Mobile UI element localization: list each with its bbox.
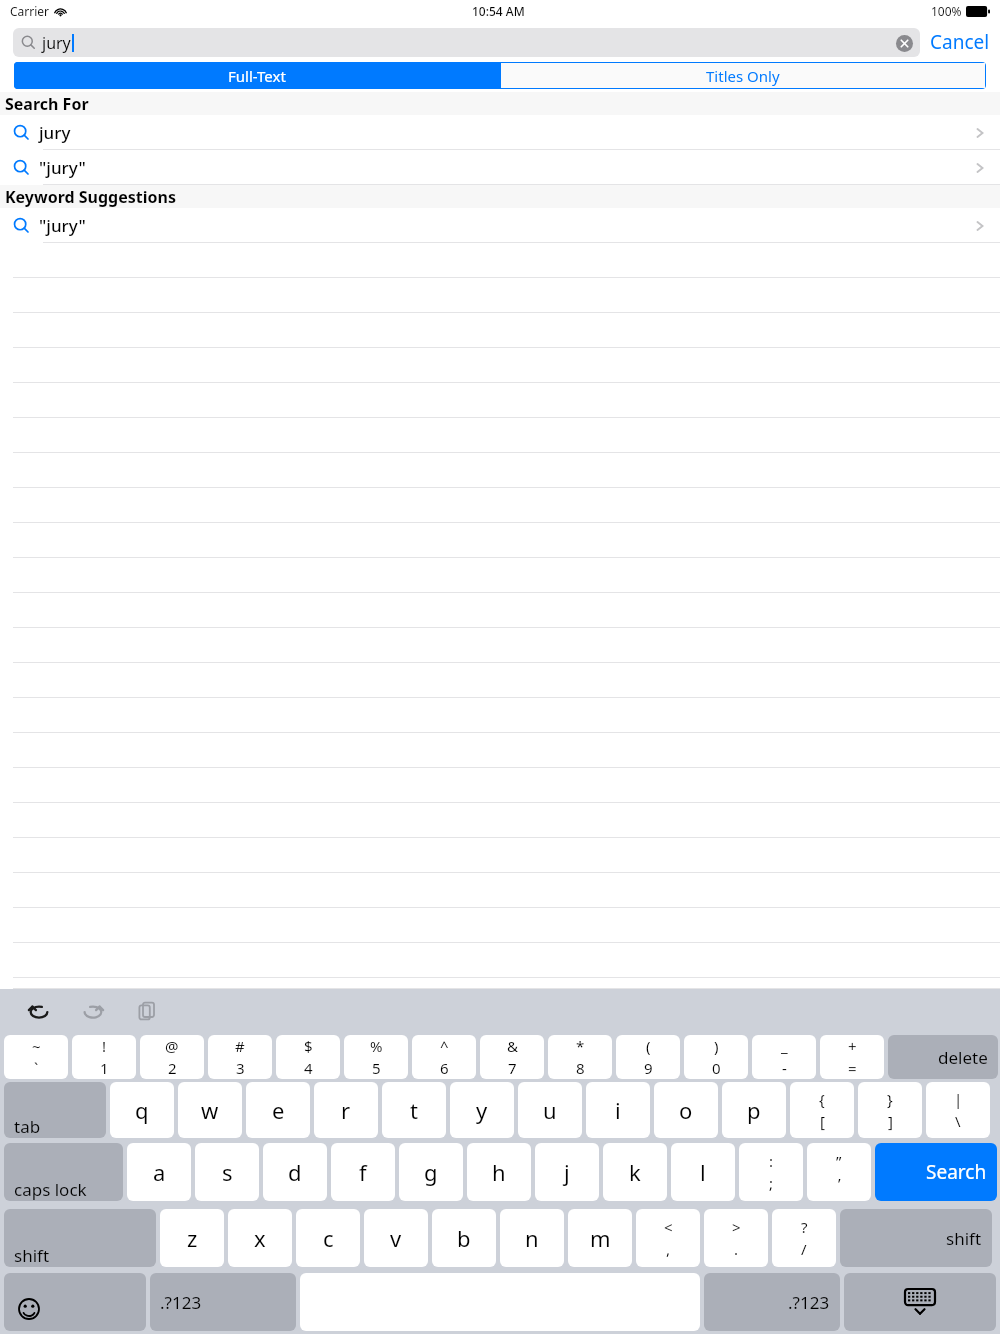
button[interactable]: } <box>858 1082 922 1138</box>
button[interactable]: ? <box>772 1209 836 1267</box>
button[interactable]: l <box>671 1143 735 1201</box>
button[interactable]: Redo <box>76 994 110 1028</box>
staticText: [ <box>820 1111 825 1131</box>
staticText: Full-Text <box>228 66 286 86</box>
button[interactable]: x <box>228 1209 292 1267</box>
staticText: , <box>666 1239 671 1259</box>
staticText: m <box>590 1223 611 1253</box>
button[interactable]: % <box>344 1035 408 1079</box>
button[interactable]: { <box>790 1082 854 1138</box>
button[interactable]: Emoji <box>4 1273 146 1331</box>
staticText: shift <box>14 1244 50 1267</box>
button[interactable]: i <box>586 1082 650 1138</box>
button[interactable]: Hide keyboard <box>844 1273 996 1331</box>
button[interactable]: e <box>246 1082 310 1138</box>
staticText: 100% <box>931 3 962 19</box>
button[interactable]: n <box>500 1209 564 1267</box>
button[interactable]: y <box>450 1082 514 1138</box>
button[interactable]: d <box>263 1143 327 1201</box>
button[interactable]: jury <box>0 115 1000 150</box>
staticText: Keyword Suggestions <box>5 186 176 208</box>
staticText: 3 <box>236 1058 245 1078</box>
button[interactable]: Clear text <box>891 30 917 56</box>
staticText: .?123 <box>788 1291 830 1314</box>
staticText: shift <box>946 1227 982 1250</box>
button[interactable]: q <box>110 1082 174 1138</box>
button[interactable]: r <box>314 1082 378 1138</box>
staticText: v <box>390 1223 402 1253</box>
button[interactable]: j <box>535 1143 599 1201</box>
staticText: 10:54 AM <box>472 3 525 19</box>
button[interactable]: "jury" <box>0 208 1000 243</box>
button[interactable]: * <box>548 1035 612 1079</box>
button[interactable]: c <box>296 1209 360 1267</box>
button[interactable]: # <box>208 1035 272 1079</box>
staticText: < <box>664 1217 673 1237</box>
button[interactable]: _ <box>752 1035 816 1079</box>
staticText: g <box>424 1157 438 1187</box>
button[interactable]: Cancel <box>930 29 990 55</box>
staticText: x <box>254 1223 266 1253</box>
button[interactable]: k <box>603 1143 667 1201</box>
button[interactable]: delete <box>888 1035 998 1079</box>
button[interactable]: z <box>160 1209 224 1267</box>
staticText: w <box>201 1095 219 1125</box>
button[interactable]: tab <box>4 1082 106 1138</box>
button[interactable]: b <box>432 1209 496 1267</box>
button[interactable]: f <box>331 1143 395 1201</box>
button[interactable]: Full-Text <box>14 62 500 89</box>
button[interactable]: w <box>178 1082 242 1138</box>
button[interactable]: + <box>820 1035 884 1079</box>
staticText: . <box>734 1239 739 1259</box>
staticText: ` <box>34 1058 39 1078</box>
button[interactable]: jury <box>13 28 920 57</box>
staticText: * <box>576 1036 585 1056</box>
staticText: Carrier <box>10 3 50 19</box>
button[interactable]: "jury" <box>0 150 1000 185</box>
button[interactable]: : <box>739 1143 803 1201</box>
button[interactable]: v <box>364 1209 428 1267</box>
button[interactable]: ) <box>684 1035 748 1079</box>
button[interactable]: < <box>636 1209 700 1267</box>
staticText: 6 <box>440 1058 449 1078</box>
button[interactable]: s <box>195 1143 259 1201</box>
button[interactable]: Titles Only <box>501 63 985 88</box>
button[interactable]: Paste <box>130 994 164 1028</box>
staticText: p <box>747 1095 761 1125</box>
button[interactable]: ” <box>807 1143 871 1201</box>
button[interactable]: shift <box>4 1209 156 1267</box>
staticText: Titles Only <box>706 66 780 86</box>
button[interactable]: & <box>480 1035 544 1079</box>
button[interactable]: $ <box>276 1035 340 1079</box>
staticText: \ <box>955 1111 961 1131</box>
button[interactable]: g <box>399 1143 463 1201</box>
staticText: $ <box>304 1036 313 1056</box>
button[interactable]: .?123 <box>704 1273 840 1331</box>
button[interactable]: m <box>568 1209 632 1267</box>
staticText: = <box>848 1058 857 1078</box>
button[interactable]: ( <box>616 1035 680 1079</box>
button[interactable]: Undo <box>22 994 56 1028</box>
button[interactable]: a <box>127 1143 191 1201</box>
button[interactable]: p <box>722 1082 786 1138</box>
button[interactable]: h <box>467 1143 531 1201</box>
button[interactable]: ! <box>72 1035 136 1079</box>
button[interactable]: u <box>518 1082 582 1138</box>
staticText: @ <box>165 1036 179 1056</box>
button[interactable]: ~ <box>4 1035 68 1079</box>
button[interactable]: t <box>382 1082 446 1138</box>
button[interactable]: ^ <box>412 1035 476 1079</box>
staticText: t <box>410 1095 418 1125</box>
button[interactable]: shift <box>840 1209 992 1267</box>
staticText: .?123 <box>160 1291 202 1314</box>
button[interactable]: @ <box>140 1035 204 1079</box>
button[interactable]: Search <box>875 1143 997 1201</box>
staticText: | <box>954 1089 963 1109</box>
button[interactable]: > <box>704 1209 768 1267</box>
button[interactable]: | <box>926 1082 990 1138</box>
button[interactable]: caps lock <box>4 1143 123 1201</box>
staticText: h <box>492 1157 506 1187</box>
button[interactable]: o <box>654 1082 718 1138</box>
button[interactable]: .?123 <box>150 1273 296 1331</box>
